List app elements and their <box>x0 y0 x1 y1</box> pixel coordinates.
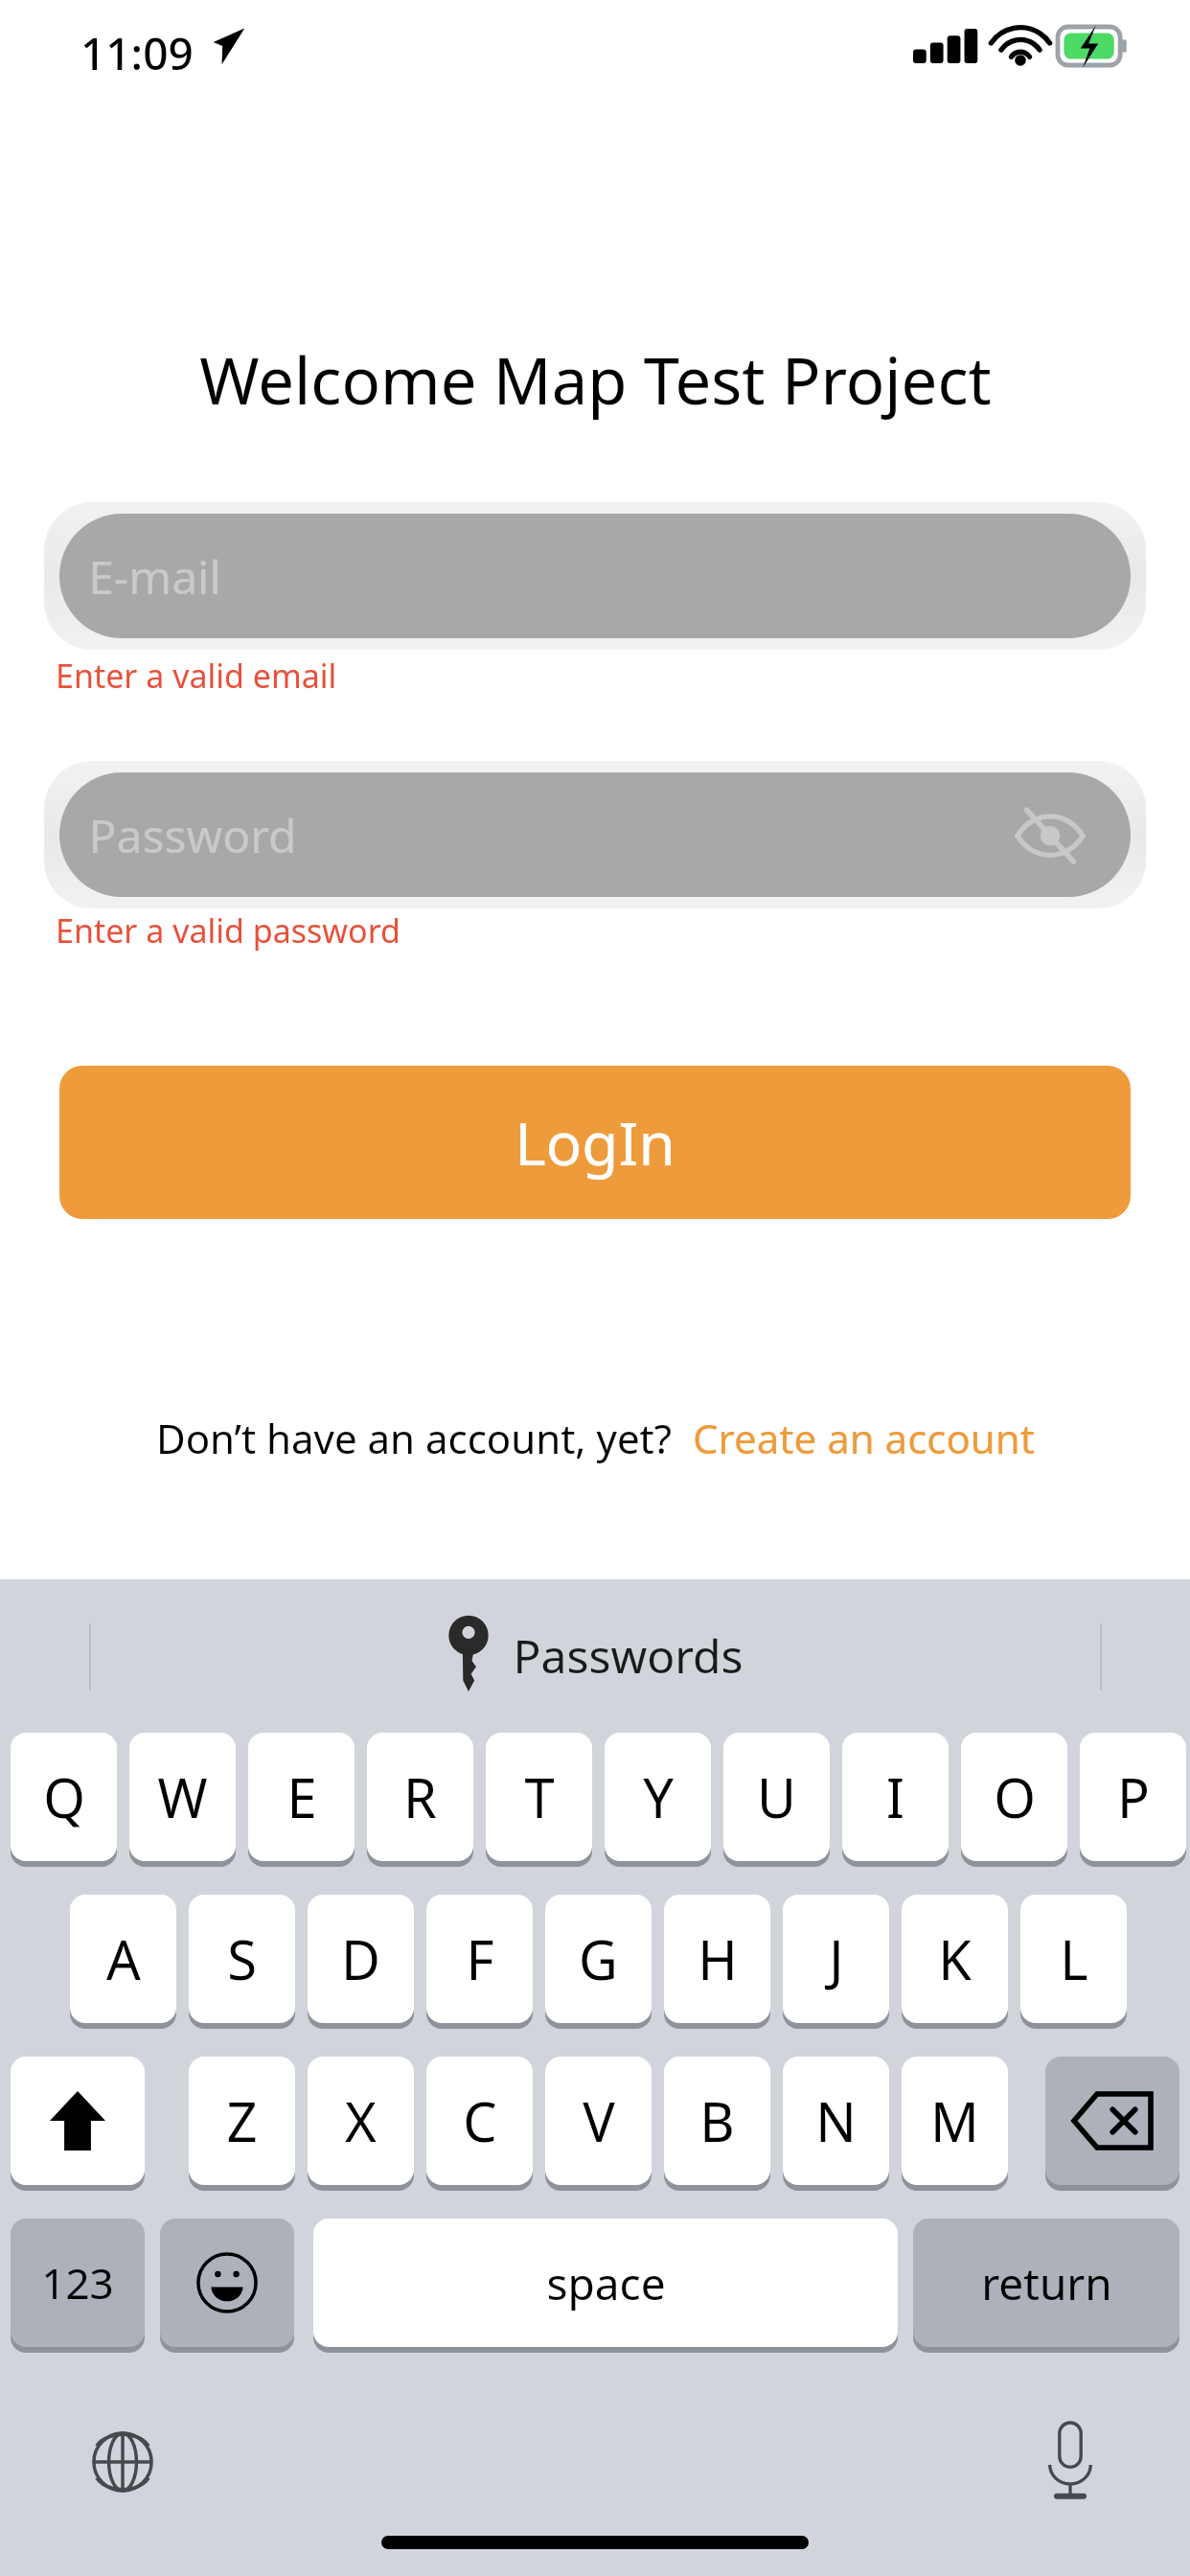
staticText: K <box>938 1922 972 1995</box>
button[interactable]: C <box>426 2057 533 2185</box>
button[interactable]: Numbers <box>11 2219 145 2347</box>
button[interactable]: L <box>1020 1895 1127 2023</box>
staticText: Enter a valid email <box>56 654 337 698</box>
staticText: W <box>157 1760 208 1833</box>
staticText: F <box>466 1922 494 1995</box>
staticText: X <box>345 2084 377 2157</box>
staticText: space <box>546 2253 666 2313</box>
staticText: Q <box>43 1760 85 1833</box>
button[interactable]: G <box>545 1895 652 2023</box>
button[interactable]: Dictation <box>1041 2423 1100 2499</box>
button[interactable]: X <box>308 2057 414 2185</box>
button[interactable]: Passwords <box>0 1579 1190 1731</box>
staticText: B <box>699 2084 735 2157</box>
button[interactable]: T <box>486 1733 592 1861</box>
button[interactable]: Password <box>59 772 1131 897</box>
staticText: Enter a valid password <box>56 908 400 953</box>
button[interactable]: Show password <box>1004 789 1096 881</box>
button[interactable]: M <box>902 2057 1008 2185</box>
button[interactable]: Backspace <box>1045 2057 1179 2185</box>
button[interactable]: J <box>783 1895 889 2023</box>
staticText: V <box>583 2084 615 2157</box>
button[interactable]: W <box>129 1733 236 1861</box>
staticText: H <box>698 1922 738 1995</box>
staticText: Welcome Map Test Project <box>199 335 992 423</box>
button[interactable]: H <box>664 1895 770 2023</box>
button[interactable]: E-mail <box>59 514 1131 638</box>
staticText: Passwords <box>513 1624 744 1687</box>
staticText: return <box>981 2253 1112 2313</box>
staticText: O <box>994 1760 1036 1833</box>
staticText: E-mail <box>88 545 221 608</box>
button[interactable]: B <box>664 2057 770 2185</box>
staticText: U <box>757 1760 796 1833</box>
button[interactable]: N <box>783 2057 889 2185</box>
button[interactable]: F <box>426 1895 533 2023</box>
staticText: A <box>106 1922 141 1995</box>
button[interactable]: O <box>961 1733 1067 1861</box>
button[interactable]: E <box>248 1733 355 1861</box>
staticText: E <box>286 1760 317 1833</box>
staticText: J <box>829 1922 844 1995</box>
button[interactable]: V <box>545 2057 652 2185</box>
staticText: N <box>815 2084 857 2157</box>
staticText: I <box>886 1760 904 1833</box>
staticText: R <box>403 1760 437 1833</box>
button[interactable]: Q <box>11 1733 117 1861</box>
button[interactable]: Space <box>313 2219 898 2347</box>
button[interactable]: Emoji <box>160 2219 294 2347</box>
staticText: 11:09 <box>80 23 194 83</box>
button[interactable]: P <box>1080 1733 1186 1861</box>
staticText: Password <box>88 804 297 866</box>
button[interactable]: Return <box>913 2219 1179 2347</box>
button[interactable]: A <box>70 1895 176 2023</box>
button[interactable]: R <box>367 1733 473 1861</box>
staticText: C <box>463 2084 497 2157</box>
staticText: L <box>1060 1922 1088 1995</box>
button[interactable]: Don’t have an account, yet? <box>156 1411 672 1465</box>
staticText: 123 <box>41 2254 114 2311</box>
staticText: M <box>930 2084 979 2157</box>
staticText: Create an account <box>693 1411 1035 1465</box>
staticText: Y <box>643 1760 674 1833</box>
button[interactable]: K <box>902 1895 1008 2023</box>
staticText: G <box>579 1922 618 1995</box>
staticText: LogIn <box>515 1102 675 1183</box>
staticText: Z <box>226 2084 258 2157</box>
button[interactable]: Y <box>605 1733 711 1861</box>
staticText: T <box>524 1760 555 1833</box>
button[interactable]: Change keyboard <box>90 2427 155 2496</box>
staticText: P <box>1117 1760 1150 1833</box>
button[interactable]: LogIn <box>59 1066 1131 1219</box>
staticText: Don’t have an account, yet? <box>156 1411 672 1465</box>
staticText: D <box>341 1922 380 1995</box>
button[interactable]: I <box>842 1733 949 1861</box>
button[interactable]: S <box>189 1895 295 2023</box>
button[interactable]: Shift <box>11 2057 145 2185</box>
button[interactable]: Z <box>189 2057 295 2185</box>
button[interactable]: U <box>723 1733 830 1861</box>
button[interactable]: D <box>308 1895 414 2023</box>
button[interactable]: Create an account <box>693 1411 1035 1465</box>
staticText: S <box>227 1922 257 1995</box>
